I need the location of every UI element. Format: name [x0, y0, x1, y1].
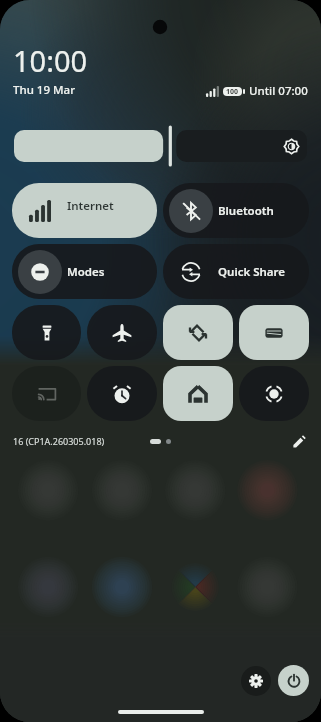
button[interactable]: Auto rotate — [163, 305, 233, 360]
button[interactable]: Modes — [12, 244, 157, 299]
button[interactable]: Wallet — [239, 305, 309, 360]
staticText: 100 — [226, 87, 239, 96]
staticText: Bluetooth — [218, 203, 274, 219]
button[interactable]: Settings — [241, 666, 271, 696]
staticText: 16 (CP1A.260305.018) — [13, 435, 105, 447]
button[interactable]: Flashlight — [12, 305, 81, 360]
button[interactable]: Edit tiles — [288, 430, 310, 452]
staticText: Internet — [67, 198, 114, 214]
button[interactable]: Bluetooth — [163, 183, 309, 238]
button[interactable]: Record screen — [239, 366, 309, 421]
button[interactable]: Power — [278, 665, 309, 696]
staticText: Until 07:00 — [249, 83, 308, 99]
staticText: Modes — [67, 264, 105, 280]
button[interactable]: Airplane mode — [87, 305, 157, 360]
staticText: Thu 19 Mar — [13, 82, 76, 98]
button[interactable]: Alarm — [87, 366, 157, 421]
staticText: Quick Share — [218, 264, 286, 280]
button[interactable]: Screen cast — [12, 366, 81, 421]
button[interactable]: Brightness — [14, 130, 307, 162]
button[interactable]: Home — [163, 366, 233, 421]
staticText: 10:00 — [13, 41, 88, 80]
button[interactable]: Quick Share — [163, 244, 309, 299]
button[interactable]: Internet — [12, 183, 157, 238]
